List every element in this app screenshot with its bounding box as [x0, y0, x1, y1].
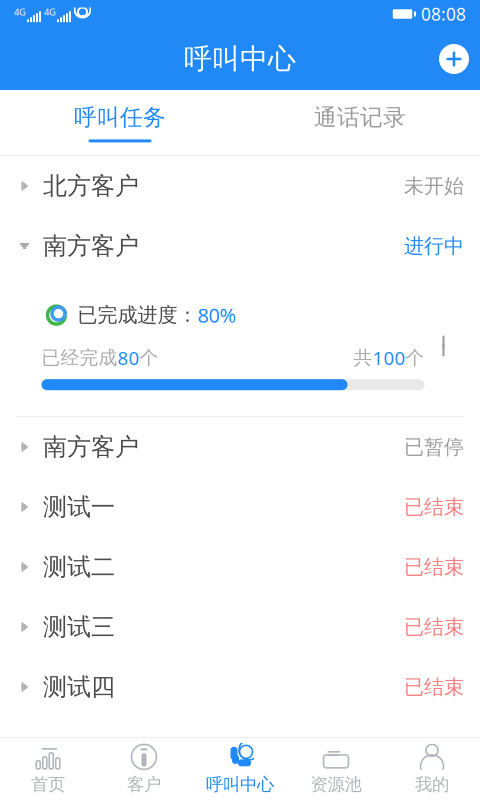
button[interactable]: 南方客户任务详情: [13, 276, 466, 416]
staticText: 4G: [44, 6, 56, 18]
staticText: 4G: [14, 6, 26, 18]
staticText: 呼叫中心: [206, 774, 274, 795]
button[interactable]: 客户: [96, 738, 192, 800]
staticText: 100: [372, 345, 405, 370]
button[interactable]: 南方客户: [0, 216, 480, 276]
staticText: 80: [117, 345, 139, 370]
staticText: 测试三: [43, 612, 115, 642]
staticText: 已结束: [404, 675, 464, 699]
button[interactable]: 首页: [0, 738, 96, 800]
staticText: 通话记录: [314, 104, 406, 131]
staticText: 未开始: [404, 174, 464, 198]
staticText: 80%: [197, 302, 236, 328]
staticText: 已结束: [404, 495, 464, 519]
button[interactable]: 通话记录: [240, 90, 480, 156]
staticText: 我的: [415, 774, 449, 795]
staticText: 08:08: [421, 2, 466, 25]
button[interactable]: 测试三: [0, 597, 480, 657]
staticText: 南方客户: [43, 432, 139, 462]
button[interactable]: 测试四: [0, 657, 480, 717]
staticText: 测试二: [43, 552, 115, 582]
staticText: 已经完成: [41, 346, 117, 369]
staticText: 已完成进度：: [77, 303, 197, 327]
staticText: 北方客户: [43, 171, 139, 201]
button[interactable]: 测试二: [0, 537, 480, 597]
button[interactable]: 我的: [384, 738, 480, 800]
staticText: 测试一: [43, 492, 115, 522]
staticText: 个: [139, 346, 158, 369]
staticText: 共: [353, 346, 372, 369]
staticText: 客户: [127, 774, 161, 795]
button[interactable]: 南方客户: [0, 417, 480, 477]
button[interactable]: 北方客户: [0, 156, 480, 216]
staticText: 已暂停: [404, 435, 464, 459]
staticText: 已结束: [404, 555, 464, 579]
staticText: 进行中: [404, 234, 464, 258]
button[interactable]: 呼叫任务: [0, 90, 240, 156]
staticText: 资源池: [310, 774, 361, 795]
staticText: 呼叫任务: [74, 104, 166, 131]
staticText: 首页: [31, 774, 65, 795]
staticText: 个: [405, 346, 424, 369]
button[interactable]: 新建任务: [428, 33, 480, 85]
button[interactable]: 呼叫中心: [192, 738, 288, 800]
staticText: 测试四: [43, 672, 115, 702]
button[interactable]: 资源池: [288, 738, 384, 800]
button[interactable]: 测试一: [0, 477, 480, 537]
staticText: 呼叫中心: [184, 42, 296, 76]
staticText: 南方客户: [43, 231, 139, 261]
staticText: 已结束: [404, 615, 464, 639]
